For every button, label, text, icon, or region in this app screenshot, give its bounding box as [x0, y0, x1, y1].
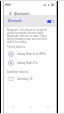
- button[interactable]: Galaxy Buds Live (59%): [4, 49, 56, 58]
- button[interactable]: Home: [22, 102, 39, 112]
- staticText: Samsung TV: [17, 77, 33, 81]
- staticText: Galaxy Buds Pro: [17, 61, 38, 65]
- staticText: Bluetooth: [8, 19, 23, 23]
- staticText: device below to pair and connect: [7, 37, 47, 40]
- staticText: Bluetooth: [14, 11, 30, 15]
- button[interactable]: Bluetooth: [4, 15, 56, 27]
- staticText: Paired devices: [7, 45, 26, 49]
- button[interactable]: Recents: [4, 102, 22, 112]
- staticText: Bluetooth settings is open. Tap a: [7, 34, 47, 37]
- button[interactable]: Back: [7, 10, 13, 16]
- button[interactable]: Back: [39, 102, 56, 112]
- button[interactable]: Galaxy Buds Pro: [4, 58, 56, 67]
- staticText: Available devices: [7, 70, 29, 74]
- button[interactable]: Samsung TV: [4, 74, 56, 83]
- staticText: visible to nearby devices while: [7, 31, 44, 34]
- staticText: with it for audio.: [7, 40, 27, 43]
- staticText: Magnetic, this device is currently: [7, 28, 47, 31]
- staticText: Galaxy Buds Live (59%): [17, 52, 46, 56]
